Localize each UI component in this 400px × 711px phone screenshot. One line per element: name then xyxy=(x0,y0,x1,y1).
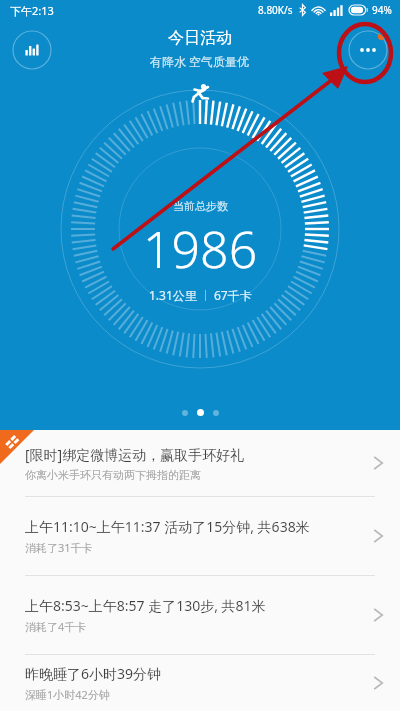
button[interactable]: Statistics xyxy=(12,30,52,70)
staticText: 上午8:53~上午8:57 走了130步, 共81米 xyxy=(25,596,266,615)
staticText: 你离小米手环只有动两下拇指的距离 xyxy=(25,468,201,482)
staticText: 消耗了31千卡 xyxy=(25,540,93,555)
staticText: 下午2:13 xyxy=(10,3,54,18)
staticText: 深睡1小时42分钟 xyxy=(25,687,110,702)
staticText: 1986 xyxy=(143,215,258,283)
staticText: 消耗了4千卡 xyxy=(25,619,87,634)
staticText: 94% xyxy=(372,3,392,17)
button[interactable]: More options xyxy=(348,30,388,70)
staticText: [限时]绑定微博运动，赢取手环好礼 xyxy=(25,445,245,464)
staticText: 67千卡 xyxy=(214,287,252,303)
button[interactable]: 上午8:53~上午8:57 走了130步, 共81米 xyxy=(0,576,400,654)
staticText: 有降水 空气质量优 xyxy=(150,53,250,69)
button[interactable]: [限时]绑定微博运动，赢取手环好礼 xyxy=(0,430,400,496)
staticText: 当前总步数 xyxy=(173,199,228,213)
staticText: 今日活动 xyxy=(168,28,232,48)
button[interactable]: 昨晚睡了6小时39分钟 xyxy=(0,655,400,711)
staticText: 1.31公里 xyxy=(149,287,197,303)
staticText: 8.80K/s xyxy=(258,3,293,17)
staticText: 上午11:10~上午11:37 活动了15分钟, 共638米 xyxy=(25,517,310,536)
button[interactable]: 上午11:10~上午11:37 活动了15分钟, 共638米 xyxy=(0,497,400,575)
staticText: 昨晚睡了6小时39分钟 xyxy=(25,664,162,683)
